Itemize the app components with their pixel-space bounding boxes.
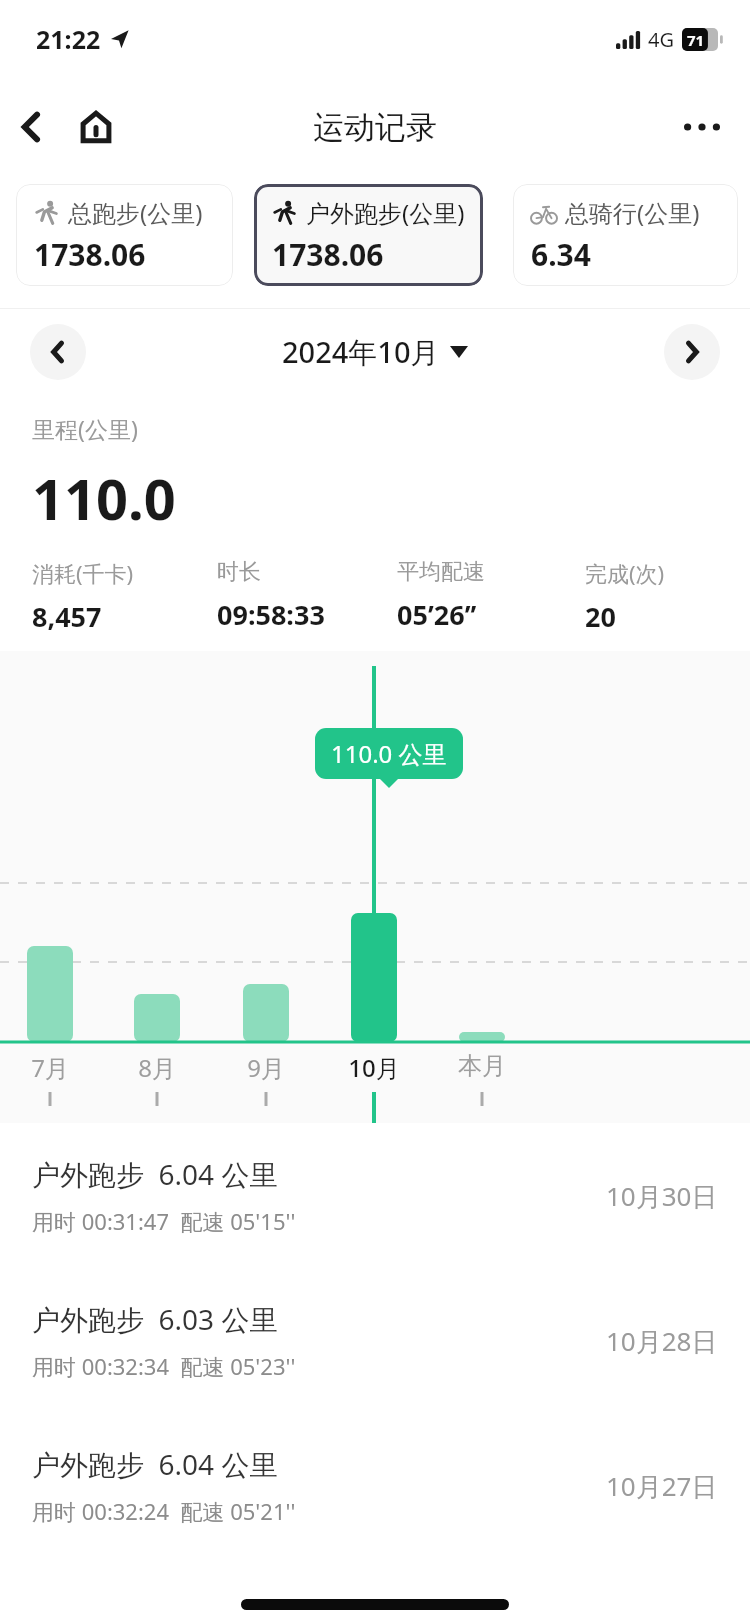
- button[interactable]: 户外跑步 6.03 公里: [0, 1268, 750, 1413]
- staticText: 9月: [237, 1051, 295, 1084]
- staticText: 完成(次): [585, 558, 665, 588]
- staticText: 09:58:33: [217, 596, 325, 633]
- button[interactable]: Previous month: [30, 324, 86, 380]
- button[interactable]: 2024年10月: [282, 332, 468, 372]
- staticText: 运动记录: [313, 108, 437, 147]
- staticText: 1738.06: [34, 234, 146, 275]
- button[interactable]: 户外跑步 6.04 公里: [0, 1123, 750, 1268]
- staticText: 平均配速: [397, 558, 485, 586]
- staticText: 本月: [453, 1051, 511, 1081]
- staticText: 户外跑步(公里): [306, 196, 465, 229]
- button[interactable]: 总骑行(公里): [513, 184, 738, 286]
- staticText: 10月28日: [606, 1323, 718, 1359]
- button[interactable]: 户外跑步(公里): [254, 184, 483, 286]
- staticText: 110.0 公里: [331, 737, 447, 770]
- staticText: 10月27日: [606, 1468, 718, 1504]
- staticText: 消耗(千卡): [32, 558, 134, 588]
- button[interactable]: Next month: [664, 324, 720, 380]
- staticText: 20: [585, 598, 616, 635]
- staticText: 7月: [21, 1051, 79, 1084]
- button[interactable]: More options: [672, 97, 732, 157]
- staticText: 用时 00:32:34 配速 05'23'': [32, 1351, 296, 1381]
- staticText: 户外跑步 6.03 公里: [32, 1300, 278, 1338]
- staticText: 4G: [648, 26, 674, 53]
- button[interactable]: 户外跑步 6.04 公里: [0, 1413, 750, 1558]
- staticText: 1738.06: [272, 234, 384, 275]
- staticText: 8,457: [32, 598, 102, 635]
- staticText: 10月30日: [606, 1178, 718, 1214]
- staticText: 110.0: [32, 460, 176, 536]
- staticText: 户外跑步 6.04 公里: [32, 1155, 278, 1193]
- staticText: 用时 00:31:47 配速 05'15'': [32, 1206, 296, 1236]
- staticText: 用时 00:32:24 配速 05'21'': [32, 1496, 296, 1526]
- staticText: 6.34: [531, 234, 591, 275]
- staticText: 时长: [217, 558, 261, 586]
- staticText: 里程(公里): [32, 413, 138, 444]
- staticText: 21:22: [36, 22, 101, 56]
- staticText: 总跑步(公里): [68, 196, 203, 229]
- button[interactable]: Home: [64, 95, 128, 159]
- staticText: 2024年10月: [282, 332, 440, 372]
- staticText: 8月: [128, 1051, 186, 1084]
- staticText: 户外跑步 6.04 公里: [32, 1445, 278, 1483]
- staticText: 05’26’’: [397, 596, 477, 633]
- staticText: 10月: [345, 1051, 403, 1084]
- button[interactable]: Back: [0, 95, 64, 159]
- staticText: 总骑行(公里): [565, 196, 700, 229]
- button[interactable]: 总跑步(公里): [16, 184, 233, 286]
- staticText: 71: [687, 30, 705, 50]
